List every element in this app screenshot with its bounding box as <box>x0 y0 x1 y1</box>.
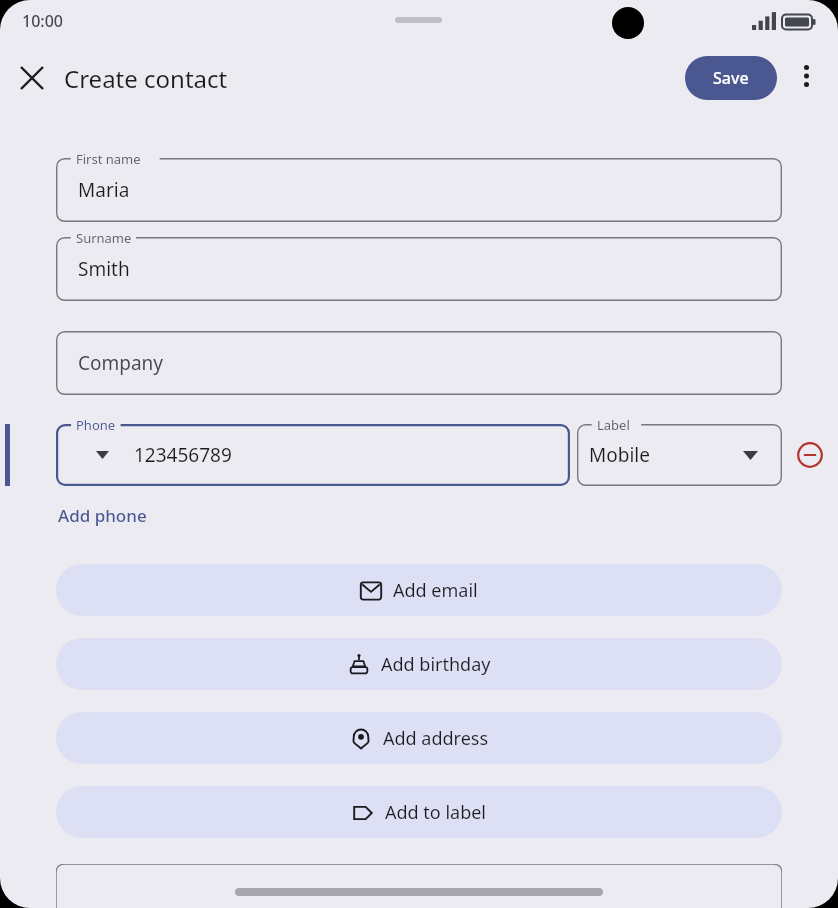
staticText: Company <box>78 350 164 376</box>
button[interactable]: Add email <box>56 564 782 616</box>
staticText: Add address <box>383 726 489 751</box>
button[interactable]: Phone <box>56 424 570 486</box>
button[interactable]: Add address <box>56 712 782 764</box>
staticText: Save <box>713 67 749 89</box>
staticText: Add birthday <box>381 652 491 677</box>
staticText: Create contact <box>64 62 228 95</box>
button[interactable]: Save <box>685 56 777 100</box>
button[interactable]: Add birthday <box>56 638 782 690</box>
button[interactable]: Close <box>8 54 56 102</box>
staticText: First name <box>76 150 141 168</box>
staticText: Add phone <box>58 504 147 527</box>
button[interactable]: Remove phone <box>790 435 830 475</box>
button[interactable]: Surname <box>56 237 782 301</box>
button[interactable] <box>56 864 782 908</box>
staticText: Add to label <box>385 800 486 825</box>
button[interactable]: Company <box>56 331 782 395</box>
button[interactable]: Add to label <box>56 786 782 838</box>
staticText: Add email <box>393 578 478 603</box>
staticText: Phone <box>76 416 116 434</box>
staticText: Surname <box>76 229 132 247</box>
staticText: Label <box>597 416 630 434</box>
staticText: Smith <box>78 256 130 282</box>
staticText: Maria <box>78 177 130 203</box>
button[interactable]: First name <box>56 158 782 222</box>
button[interactable]: Add phone <box>56 500 149 531</box>
button[interactable]: More options <box>784 54 828 98</box>
staticText: 10:00 <box>22 10 63 32</box>
staticText: Mobile <box>589 442 650 468</box>
staticText: 123456789 <box>134 442 232 468</box>
button[interactable]: Label <box>577 424 782 486</box>
